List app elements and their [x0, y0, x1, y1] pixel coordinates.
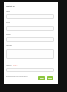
staticText: 7 + 2 =	[13, 65, 18, 67]
button[interactable]: Subject field	[6, 37, 54, 42]
staticText: Subject	[6, 34, 11, 36]
button[interactable]: E-mail field	[6, 26, 54, 31]
staticText: Name	[6, 11, 10, 13]
button[interactable]: Send	[38, 76, 45, 80]
staticText: Captcha:	[6, 65, 12, 67]
staticText: Reset	[48, 77, 52, 79]
staticText: Message	[6, 45, 12, 47]
button[interactable]: Reset	[47, 76, 53, 80]
button[interactable]: Name field	[6, 14, 54, 19]
staticText: Contact Us	[6, 5, 15, 7]
staticText: Send	[40, 77, 44, 79]
button[interactable]: Message field	[6, 49, 54, 59]
staticText: Required fields are marked with *	[6, 76, 28, 78]
button[interactable]: Captcha field	[6, 68, 54, 72]
staticText: E-mail	[6, 22, 11, 24]
